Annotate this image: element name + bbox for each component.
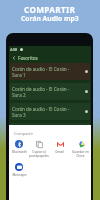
button[interactable]: Back — [9, 53, 18, 63]
staticText: Corán de audio - El Corán - — [12, 106, 70, 112]
button[interactable]: Mensajes — [9, 163, 29, 177]
staticText: Copiar al portapapeles — [29, 150, 49, 158]
button[interactable]: Guardar en Drive — [70, 140, 91, 158]
staticText: 4:08 — [10, 47, 18, 52]
staticText: Sura 1 — [12, 72, 26, 78]
staticText: Sura 2 — [12, 92, 26, 98]
staticText: Sura 4 — [12, 132, 26, 138]
button[interactable]: Gmail — [49, 140, 70, 154]
staticText: Favoritos — [18, 55, 38, 61]
button[interactable]: Copiar al portapapeles — [29, 140, 49, 158]
staticText: Compartir — [14, 131, 34, 136]
staticText: Corán de audio - El Corán - — [12, 66, 70, 72]
staticText: COMPARTIR — [24, 4, 76, 15]
button[interactable]: Corán de audio - El Corán - — [10, 63, 90, 80]
staticText: Guardar en Drive — [72, 150, 89, 158]
staticText: Sura 3 — [12, 112, 26, 118]
staticText: Bluetooth — [12, 150, 27, 154]
button[interactable]: Corán de audio - El Corán - — [10, 83, 90, 100]
staticText: Gmail — [55, 150, 64, 154]
button[interactable]: Bluetooth — [9, 140, 29, 154]
staticText: Corán de audio - El Corán - — [12, 86, 70, 92]
staticText: Corán Audio mp3 — [21, 14, 79, 23]
staticText: Mensajes — [12, 173, 27, 177]
button[interactable]: Corán de audio - El Corán - — [10, 103, 90, 120]
button[interactable]: Corán de audio - El Corán - — [10, 123, 90, 140]
